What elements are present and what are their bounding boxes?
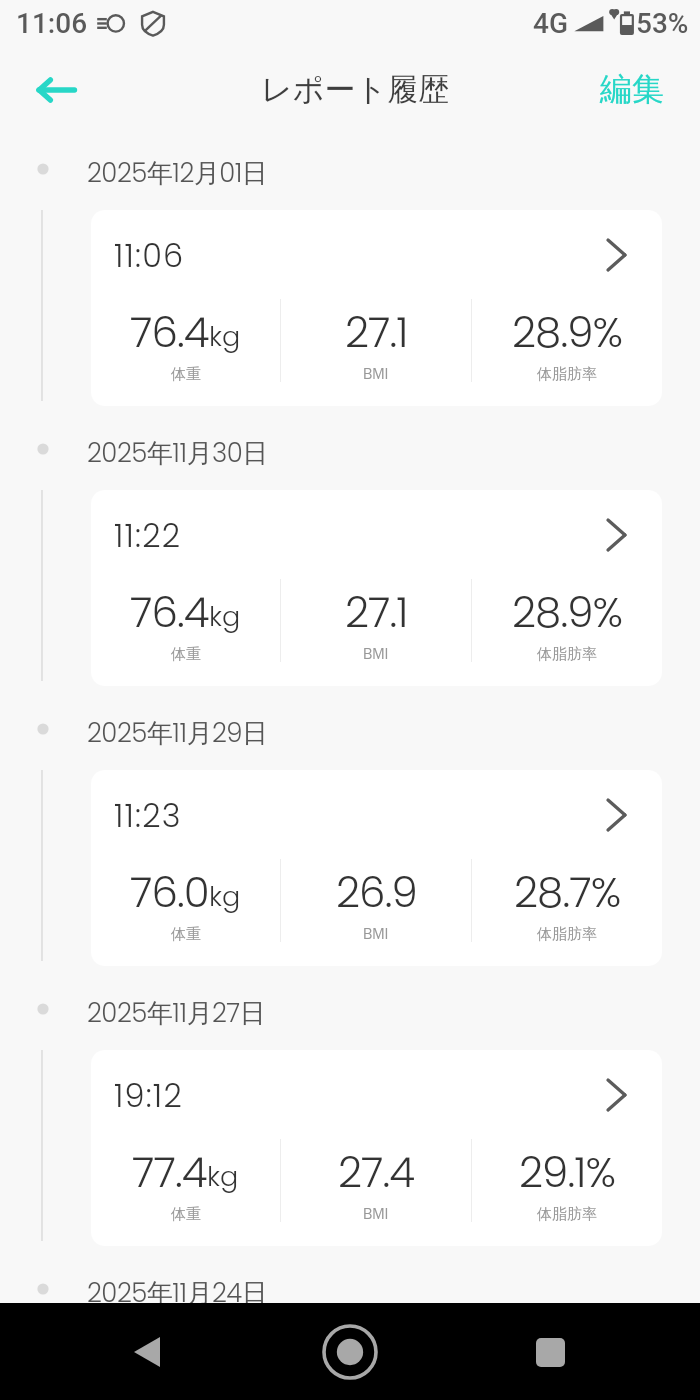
staticText: 体脂肪率	[537, 925, 597, 944]
staticText: kg	[209, 878, 241, 916]
staticText: 11:06	[114, 233, 185, 278]
staticText: 26.9	[336, 863, 417, 922]
staticText: BMI	[363, 365, 389, 384]
staticText: BMI	[363, 645, 389, 664]
staticText: BMI	[363, 1205, 389, 1224]
staticText: 11:23	[114, 793, 182, 838]
staticText: 2025年11月27日	[87, 995, 266, 1031]
staticText: 76.4	[130, 583, 209, 642]
staticText: 28.7%	[514, 863, 621, 922]
staticText: 53%	[636, 7, 689, 40]
staticText: 08:30	[114, 1353, 205, 1398]
button[interactable]: 11:23	[91, 770, 662, 966]
staticText: 2025年11月24日	[87, 1275, 268, 1311]
button[interactable]: 08:30	[91, 1330, 662, 1400]
staticText: 77.4	[132, 1143, 207, 1202]
staticText: 2025年11月30日	[87, 435, 268, 471]
staticText: 体重	[171, 645, 201, 664]
button[interactable]: Home	[310, 1312, 390, 1392]
staticText: 2025年12月01日	[87, 155, 268, 191]
button[interactable]: 11:06	[91, 210, 662, 406]
button[interactable]: Back	[107, 1312, 187, 1392]
staticText: 76.0	[130, 863, 209, 922]
button[interactable]: 編集	[600, 70, 664, 110]
button[interactable]: 19:12	[91, 1050, 662, 1246]
staticText: 体重	[171, 1205, 201, 1224]
staticText: 編集	[600, 69, 664, 109]
staticText: 27.1	[345, 583, 408, 642]
staticText: 28.9%	[512, 583, 623, 642]
button[interactable]: Recent apps	[510, 1312, 590, 1392]
staticText: 11:06	[16, 7, 88, 40]
button[interactable]: Back	[16, 50, 96, 130]
staticText: 29.1%	[519, 1143, 616, 1202]
staticText: kg	[207, 1158, 239, 1196]
staticText: 11:22	[114, 513, 182, 558]
staticText: 体脂肪率	[537, 1205, 597, 1224]
staticText: kg	[209, 598, 241, 636]
staticText: 体重	[171, 925, 201, 944]
staticText: 19:12	[114, 1073, 183, 1118]
staticText: 体重	[171, 365, 201, 384]
staticText: 体脂肪率	[537, 645, 597, 664]
staticText: 28.9%	[512, 303, 623, 362]
staticText: 4G	[533, 7, 568, 40]
button[interactable]: 11:22	[91, 490, 662, 686]
staticText: 27.4	[338, 1143, 415, 1202]
staticText: 体脂肪率	[537, 365, 597, 384]
staticText: BMI	[363, 925, 389, 944]
staticText: 2025年11月29日	[87, 715, 268, 751]
staticText: kg	[209, 318, 241, 356]
staticText: 27.1	[345, 303, 408, 362]
staticText: レポート履歴	[261, 70, 450, 109]
staticText: 76.4	[130, 303, 209, 362]
